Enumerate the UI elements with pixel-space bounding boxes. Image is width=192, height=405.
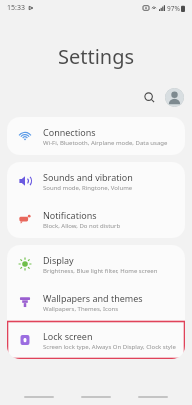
staticText: Sound mode, Ringtone, Volume bbox=[43, 184, 133, 192]
staticText: Display bbox=[43, 254, 74, 266]
staticText: 15:33 bbox=[7, 3, 25, 13]
button[interactable]: Wallpapers and themes bbox=[7, 283, 185, 321]
staticText: Brightness, Blue light filter, Home scre… bbox=[43, 267, 158, 275]
button[interactable]: Profile bbox=[165, 88, 184, 107]
staticText: Notifications bbox=[43, 209, 97, 221]
staticText: Wallpapers, Themes, Icons bbox=[43, 305, 119, 313]
button[interactable]: Connections bbox=[7, 117, 185, 155]
button[interactable]: Navigation bbox=[21, 390, 57, 404]
staticText: Connections bbox=[43, 126, 96, 138]
staticText: Screen lock type, Always On Display, Clo… bbox=[43, 343, 176, 351]
staticText: Settings bbox=[58, 43, 135, 70]
button[interactable]: Lock screen bbox=[7, 321, 185, 359]
button[interactable]: Navigation bbox=[135, 390, 171, 404]
staticText: Wi-Fi, Bluetooth, Airplane mode, Data us… bbox=[43, 139, 168, 147]
button[interactable]: Display bbox=[7, 245, 185, 283]
button[interactable]: Notifications bbox=[7, 200, 185, 238]
staticText: 97% bbox=[167, 4, 180, 13]
staticText: Sounds and vibration bbox=[43, 171, 133, 183]
staticText: Wallpapers and themes bbox=[43, 292, 143, 304]
button[interactable]: Search bbox=[137, 85, 161, 109]
staticText: Lock screen bbox=[43, 330, 93, 342]
button[interactable]: Sounds and vibration bbox=[7, 162, 185, 200]
staticText: Block, Allow, Do not disturb bbox=[43, 222, 121, 230]
button[interactable]: Navigation bbox=[78, 390, 114, 404]
